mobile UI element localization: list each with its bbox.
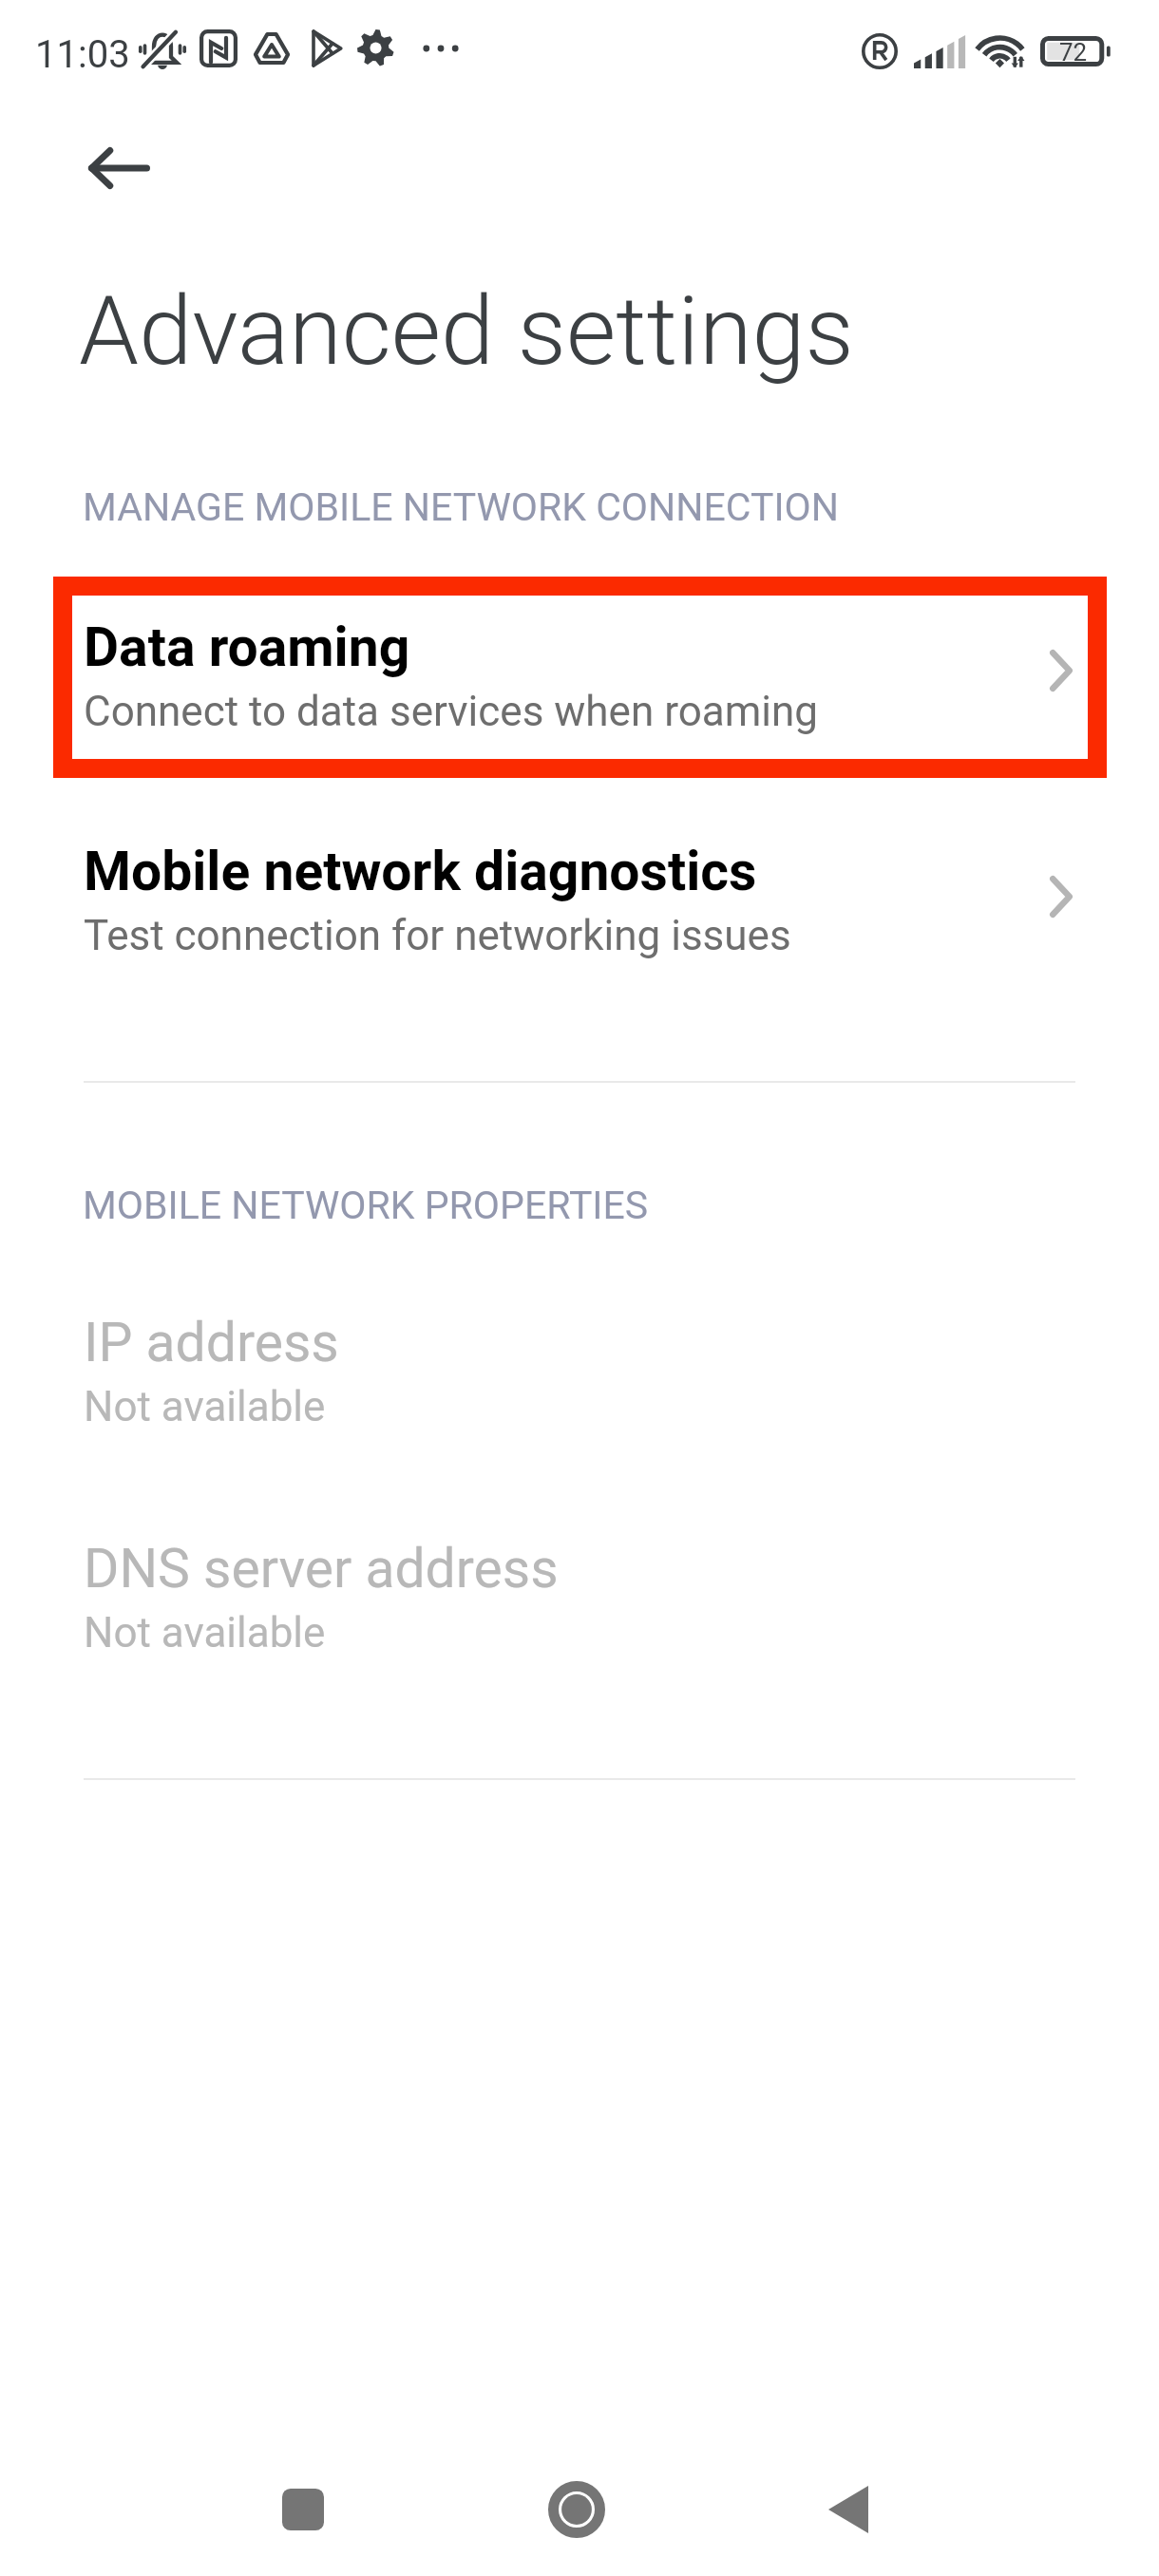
staticText: Not available [84, 1608, 326, 1657]
staticText: Advanced settings [79, 275, 854, 387]
staticText: Connect to data services when roaming [84, 687, 818, 736]
button[interactable]: Navigate up [73, 122, 165, 214]
button[interactable]: Home [535, 2468, 618, 2551]
staticText: DNS server address [84, 1537, 559, 1601]
button[interactable]: Mobile network diagnostics [53, 801, 1107, 964]
button[interactable]: IP address [53, 1272, 1107, 1435]
staticText: IP address [84, 1311, 339, 1374]
staticText: Not available [84, 1382, 326, 1431]
staticText: 72 [1059, 38, 1088, 66]
button[interactable]: DNS server address [53, 1498, 1107, 1661]
staticText: Mobile network diagnostics [84, 840, 757, 903]
staticText: MOBILE NETWORK PROPERTIES [83, 1183, 649, 1228]
button[interactable]: Back [807, 2468, 890, 2551]
button[interactable]: Data roaming [53, 577, 1107, 740]
staticText: Data roaming [84, 616, 410, 679]
staticText: 11:03 [35, 32, 130, 77]
staticText: MANAGE MOBILE NETWORK CONNECTION [83, 484, 840, 530]
staticText: Test connection for networking issues [84, 911, 791, 960]
button[interactable]: Recent apps [261, 2468, 345, 2551]
